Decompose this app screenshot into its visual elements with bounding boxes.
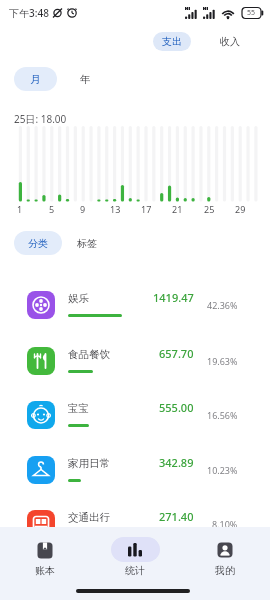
staticText: 1	[17, 203, 23, 215]
button[interactable]	[105, 533, 165, 581]
staticText: 交通出行	[68, 511, 110, 524]
staticText: 家用日常	[68, 457, 110, 470]
button[interactable]	[14, 339, 256, 392]
staticText: 分类	[28, 237, 48, 250]
staticText: 555.00	[159, 400, 194, 415]
button[interactable]: 标签	[66, 231, 108, 255]
button[interactable]: 支出	[153, 32, 191, 51]
button[interactable]	[14, 283, 256, 336]
staticText: 16.56%	[207, 409, 238, 421]
staticText: 收入	[220, 35, 240, 48]
staticText: 5	[49, 203, 55, 215]
button[interactable]: 年	[66, 67, 104, 91]
staticText: 账本	[35, 564, 55, 577]
staticText: 19.63%	[207, 355, 238, 367]
staticText: 9	[80, 203, 86, 215]
staticText: 10.23%	[207, 464, 238, 476]
button[interactable]	[195, 533, 255, 581]
staticText: 月	[30, 73, 41, 86]
staticText: 271.40	[159, 509, 194, 524]
staticText: 我的	[215, 564, 235, 577]
button[interactable]	[14, 393, 256, 446]
staticText: 年	[80, 73, 91, 86]
staticText: 657.70	[159, 346, 194, 361]
staticText: 342.89	[159, 455, 194, 470]
staticText: 13	[110, 203, 121, 215]
staticText: 17	[141, 203, 152, 215]
staticText: 55	[247, 8, 256, 18]
staticText: 25	[204, 203, 215, 215]
staticText: 1419.47	[153, 290, 194, 305]
staticText: 宝宝	[68, 402, 89, 415]
staticText: 娱乐	[68, 292, 89, 305]
staticText: 8.10%	[212, 518, 238, 530]
button[interactable]: 分类	[14, 231, 62, 255]
button[interactable]: 月	[14, 67, 57, 91]
staticText: 21	[172, 203, 183, 215]
button[interactable]	[14, 502, 256, 555]
staticText: 29	[235, 203, 246, 215]
staticText: 42.36%	[207, 299, 238, 311]
staticText: 下午3:48	[9, 6, 49, 20]
button[interactable]: 收入	[208, 32, 252, 51]
staticText: 食品餐饮	[68, 348, 110, 361]
staticText: 统计	[125, 564, 145, 577]
button[interactable]	[14, 448, 256, 501]
staticText: 25日: 18.00	[14, 112, 67, 126]
staticText: 标签	[77, 237, 97, 250]
button[interactable]	[15, 533, 75, 581]
staticText: 支出	[162, 35, 182, 48]
